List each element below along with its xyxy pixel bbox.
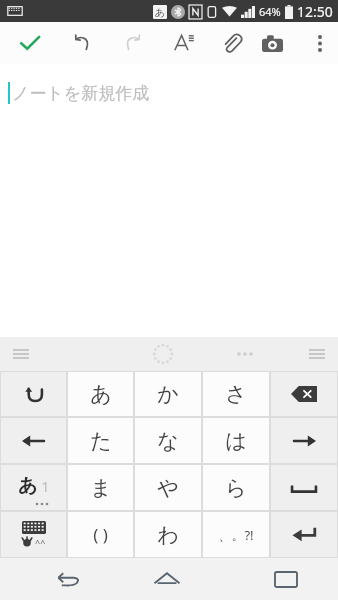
button[interactable]: か	[135, 372, 201, 416]
button[interactable]: ( )	[68, 512, 133, 557]
button[interactable]: Camera	[252, 22, 292, 64]
staticText: あ	[155, 6, 166, 19]
staticText: あ	[18, 474, 38, 498]
button[interactable]: や	[135, 465, 201, 510]
button[interactable]	[271, 512, 337, 557]
button[interactable]	[271, 465, 337, 510]
button[interactable]: Loading	[150, 341, 176, 367]
button[interactable]: More	[230, 337, 260, 371]
staticText: か	[157, 381, 179, 407]
button[interactable]: は	[203, 418, 269, 463]
staticText: た	[90, 428, 112, 454]
button[interactable]: 、。?!	[203, 512, 269, 557]
staticText: 12:50	[297, 2, 333, 21]
staticText: さ	[225, 381, 247, 407]
button[interactable]: Back	[38, 558, 98, 600]
staticText: ノートを新規作成	[12, 83, 150, 104]
button[interactable]: More options	[302, 22, 338, 64]
button[interactable]: Menu	[6, 337, 36, 371]
button[interactable]: Attach	[212, 22, 252, 64]
button[interactable]: あ	[68, 372, 133, 416]
button[interactable]: Settings	[302, 337, 332, 371]
staticText: わ	[157, 522, 179, 548]
button[interactable]: Undo	[62, 22, 102, 64]
button[interactable]: ノートを新規作成	[0, 64, 338, 337]
staticText: な	[157, 428, 179, 454]
button[interactable]: ら	[203, 465, 269, 510]
staticText: ら	[225, 475, 247, 501]
staticText: ま	[90, 475, 112, 501]
button[interactable]: ま	[68, 465, 133, 510]
button[interactable]: Redo	[113, 22, 153, 64]
button[interactable]	[271, 418, 337, 463]
button[interactable]	[1, 418, 66, 463]
button[interactable]	[1, 372, 66, 416]
button[interactable]: ^^	[1, 512, 66, 557]
staticText: あ	[90, 381, 112, 407]
button[interactable]: あ	[1, 465, 66, 510]
staticText: ^^	[35, 536, 46, 548]
button[interactable]: Done	[8, 22, 52, 64]
button[interactable]: Home	[137, 558, 197, 600]
button[interactable]: Format text	[164, 22, 204, 64]
staticText: や	[157, 475, 179, 501]
button[interactable]	[271, 372, 337, 416]
button[interactable]: Recent apps	[256, 558, 316, 600]
button[interactable]: な	[135, 418, 201, 463]
staticText: ( )	[93, 523, 108, 546]
staticText: 1	[41, 476, 50, 496]
button[interactable]: さ	[203, 372, 269, 416]
staticText: 、。?!	[218, 526, 254, 544]
button[interactable]: た	[68, 418, 133, 463]
button[interactable]: わ	[135, 512, 201, 557]
staticText: 64%	[259, 4, 281, 19]
staticText: は	[225, 428, 247, 454]
